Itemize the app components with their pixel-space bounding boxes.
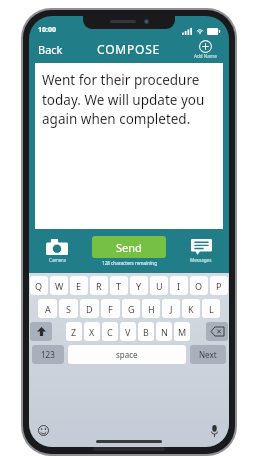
button[interactable]: K — [182, 299, 200, 318]
button[interactable]: J — [162, 299, 180, 318]
staticText: X — [89, 326, 95, 338]
staticText: 123 — [41, 349, 55, 360]
button[interactable]: F — [101, 299, 120, 318]
button[interactable]: 123 — [32, 345, 64, 364]
button[interactable]: Next — [190, 345, 226, 364]
button[interactable]: E — [70, 276, 88, 295]
button[interactable]: Went for their procedure today. We will … — [35, 63, 223, 229]
button[interactable]: H — [142, 299, 160, 318]
button[interactable]: R — [90, 276, 108, 295]
staticText: L — [209, 303, 214, 315]
button[interactable]: X — [84, 322, 100, 341]
staticText: Back — [38, 42, 63, 57]
staticText: W — [55, 280, 64, 292]
button[interactable]: A — [38, 299, 57, 318]
staticText: M — [178, 326, 187, 338]
staticText: E — [76, 280, 82, 292]
staticText: Next — [199, 349, 217, 360]
staticText: Messages — [190, 257, 212, 263]
staticText: COMPOSE — [97, 41, 161, 57]
staticText: 128 characters remaining — [102, 260, 157, 266]
staticText: F — [108, 303, 113, 315]
staticText: C — [107, 326, 113, 338]
staticText: Add Name — [194, 53, 217, 59]
staticText: N — [161, 326, 168, 338]
staticText: K — [188, 303, 194, 315]
staticText: G — [128, 303, 135, 315]
staticText: T — [116, 280, 122, 292]
button[interactable]: Backspace — [206, 322, 228, 341]
staticText: D — [86, 303, 93, 315]
button[interactable]: Emoji — [36, 423, 51, 438]
button[interactable]: space — [68, 345, 186, 364]
button[interactable]: G — [122, 299, 140, 318]
staticText: Z — [71, 326, 77, 338]
staticText: Send — [116, 240, 142, 255]
button[interactable]: Back — [36, 39, 65, 60]
button[interactable]: Send — [92, 236, 166, 258]
button[interactable]: C — [102, 322, 118, 341]
staticText: 10:00 — [38, 25, 56, 35]
button[interactable]: L — [202, 299, 220, 318]
button[interactable]: I — [170, 276, 188, 295]
button[interactable]: N — [156, 322, 172, 341]
button[interactable]: Z — [66, 322, 82, 341]
button[interactable]: Messages — [179, 237, 223, 265]
staticText: S — [66, 303, 71, 315]
button[interactable]: V — [120, 322, 136, 341]
button[interactable]: S — [59, 299, 78, 318]
staticText: Camera — [49, 257, 66, 263]
button[interactable]: Q — [30, 276, 48, 295]
staticText: R — [96, 280, 102, 292]
staticText: Went for their procedure today. We will … — [42, 71, 217, 128]
button[interactable]: B — [138, 322, 154, 341]
staticText: Q — [35, 280, 43, 292]
button[interactable]: T — [110, 276, 128, 295]
button[interactable]: W — [50, 276, 68, 295]
button[interactable]: D — [80, 299, 99, 318]
button[interactable]: Camera — [35, 237, 79, 265]
button[interactable]: Add Name — [188, 35, 222, 63]
button[interactable]: Voice input — [207, 423, 222, 438]
staticText: H — [148, 303, 155, 315]
button[interactable]: Shift — [30, 322, 52, 341]
button[interactable]: Y — [130, 276, 148, 295]
button[interactable]: U — [150, 276, 168, 295]
staticText: O — [195, 280, 203, 292]
staticText: A — [45, 303, 51, 315]
staticText: J — [170, 303, 173, 315]
staticText: space — [116, 349, 138, 360]
staticText: V — [125, 326, 131, 338]
button[interactable]: P — [210, 276, 228, 295]
staticText: I — [177, 280, 181, 292]
button[interactable]: M — [174, 322, 190, 341]
staticText: B — [143, 326, 149, 338]
staticText: Y — [136, 280, 142, 292]
staticText: U — [156, 280, 163, 292]
staticText: P — [216, 280, 222, 292]
button[interactable]: O — [190, 276, 208, 295]
